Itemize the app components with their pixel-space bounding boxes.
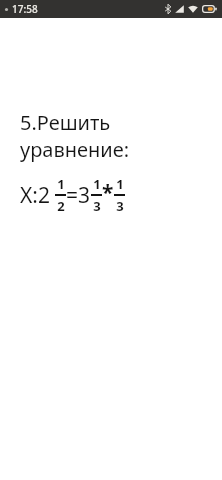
staticText: 3 [93,197,101,215]
staticText: 2 [57,197,65,215]
staticText: 1 [57,175,65,193]
staticText: =3 [66,181,91,210]
staticText: X:2 [20,181,50,210]
staticText: 5.Решить уравнение: [20,109,222,163]
staticText: 1 [93,175,101,193]
staticText: 17:58 [12,2,38,16]
staticText: 1 [116,175,124,193]
staticText: 3 [116,197,124,215]
staticText: * [102,178,114,207]
